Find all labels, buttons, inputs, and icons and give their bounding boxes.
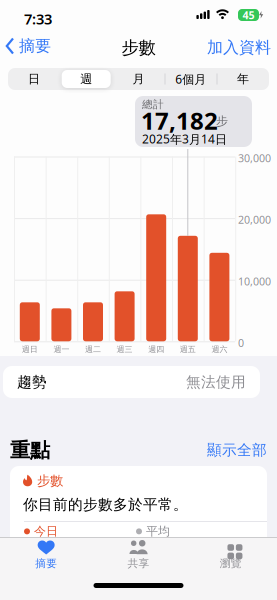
button[interactable]: 摘要 — [6, 34, 51, 58]
staticText: 無法使用 — [186, 373, 246, 391]
staticText: 0 — [238, 336, 244, 350]
button[interactable]: 摘要 — [0, 540, 92, 580]
staticText: 瀏覽 — [220, 557, 242, 570]
staticText: 重點 — [10, 438, 50, 463]
staticText: 平均 — [146, 524, 170, 539]
button[interactable]: 週 — [60, 68, 112, 90]
staticText: 7:33 — [24, 9, 52, 28]
staticText: 週五 — [180, 344, 196, 354]
staticText: 你目前的步數多於平常。 — [23, 495, 188, 513]
button[interactable]: 顯示全部 — [207, 441, 267, 459]
staticText: 10,000 — [238, 274, 271, 288]
button[interactable]: 步數 — [10, 466, 267, 576]
staticText: 加入資料 — [207, 37, 271, 57]
staticText: 週三 — [117, 344, 133, 354]
staticText: 步 — [216, 114, 228, 129]
button[interactable]: 年 — [217, 68, 269, 90]
staticText: 週四 — [148, 344, 164, 354]
staticText: 共享 — [127, 557, 149, 570]
staticText: 顯示全部 — [207, 441, 267, 459]
staticText: 週一 — [53, 344, 69, 354]
staticText: 週日 — [22, 344, 38, 354]
staticText: 趨勢 — [17, 373, 47, 391]
staticText: 年 — [237, 72, 249, 86]
button[interactable]: 6個月 — [165, 68, 217, 90]
button[interactable]: 瀏覽 — [185, 540, 277, 580]
staticText: 月 — [132, 72, 144, 86]
staticText: 日 — [28, 72, 40, 86]
staticText: 摘要 — [35, 557, 57, 570]
staticText: 30,000 — [238, 151, 271, 165]
button[interactable]: 月 — [112, 68, 165, 90]
staticText: 2025年3月14日 — [142, 131, 227, 147]
staticText: 週 — [80, 72, 92, 86]
staticText: 週六 — [211, 344, 227, 354]
button[interactable]: 趨勢 — [10, 366, 267, 398]
staticText: 總計 — [142, 98, 164, 111]
staticText: 45 — [242, 8, 254, 22]
button[interactable]: 日 — [8, 68, 60, 90]
button[interactable]: 共享 — [92, 540, 185, 580]
staticText: 步數 — [37, 472, 63, 489]
button[interactable]: 加入資料 — [207, 37, 271, 57]
staticText: 週二 — [85, 344, 101, 354]
staticText: 步數 — [121, 37, 155, 58]
staticText: 今日 — [34, 524, 58, 539]
staticText: 6個月 — [175, 71, 206, 87]
staticText: 摘要 — [19, 36, 51, 56]
staticText: 17,182 — [141, 104, 218, 136]
staticText: 20,000 — [238, 213, 271, 227]
